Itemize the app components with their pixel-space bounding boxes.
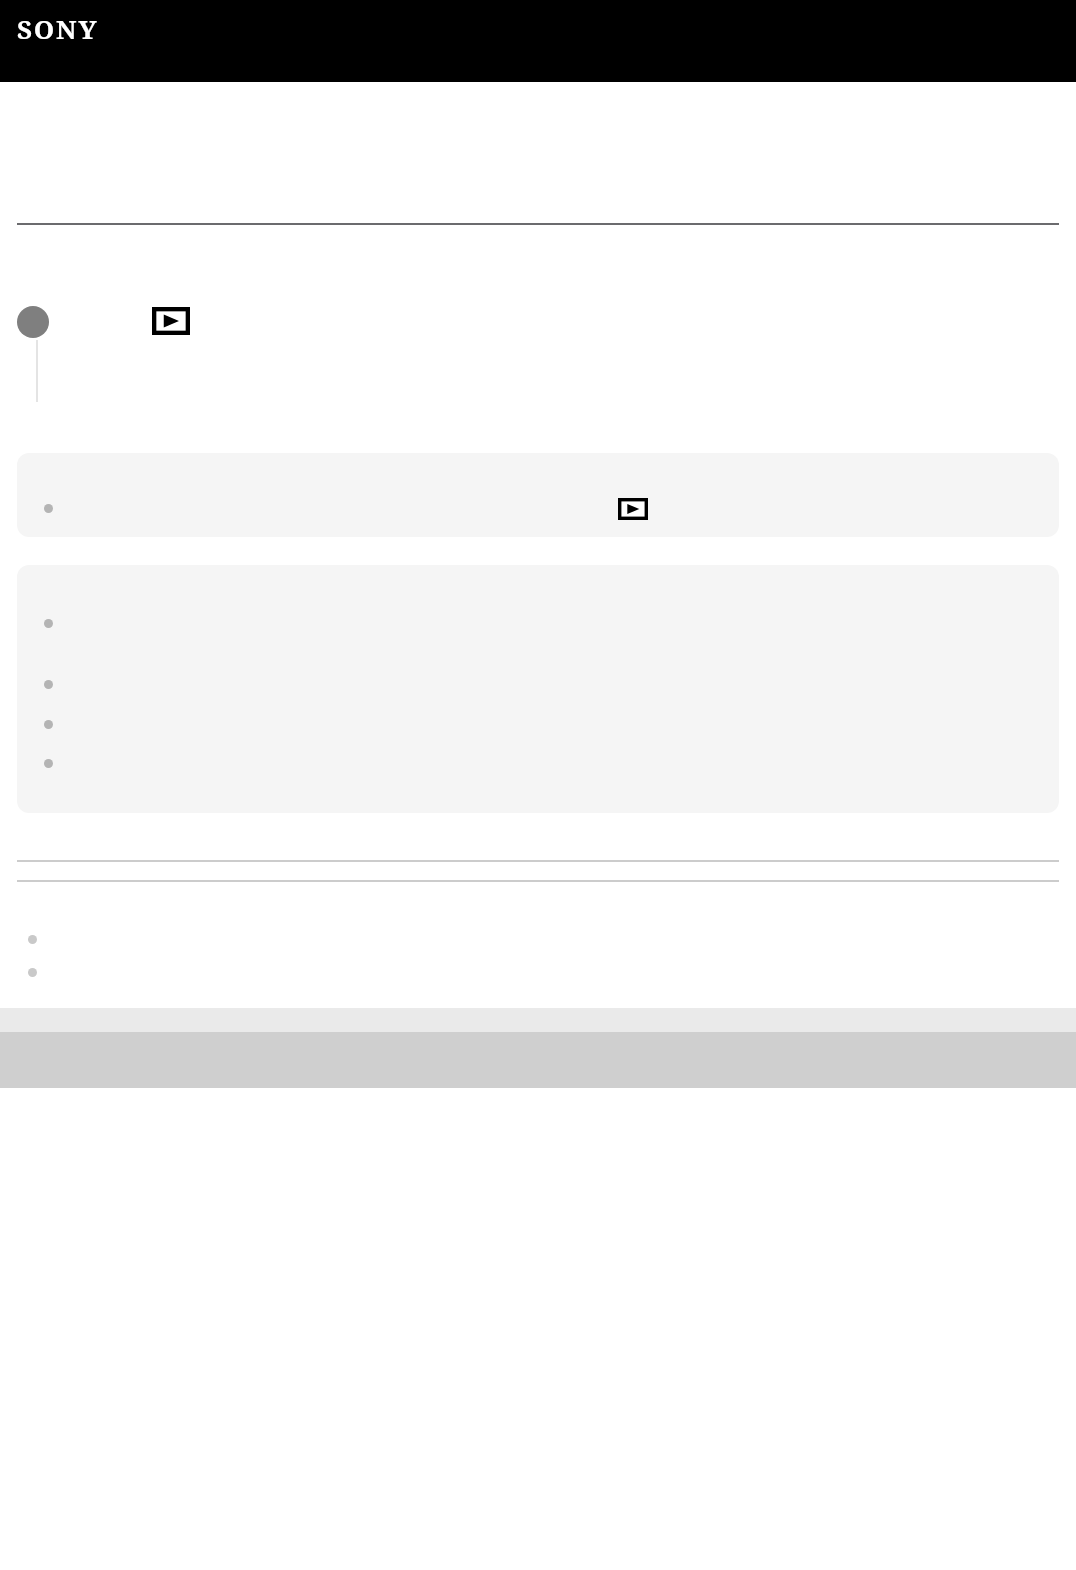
staticText: SONY	[17, 11, 99, 46]
other: Playback	[618, 498, 648, 520]
button[interactable]: SONY	[0, 0, 1076, 82]
button[interactable]: Playback	[17, 453, 1059, 537]
other: Playback	[152, 307, 190, 335]
